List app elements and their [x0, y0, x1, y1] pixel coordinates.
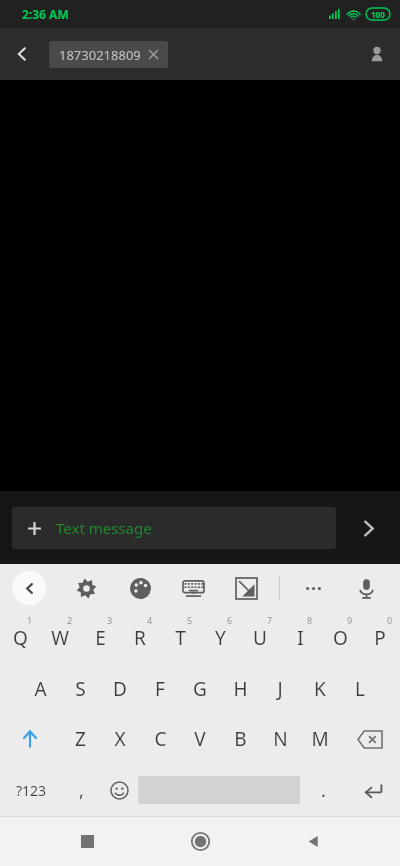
staticText: 6	[227, 614, 233, 626]
button[interactable]: X	[100, 714, 140, 764]
staticText: O	[333, 625, 348, 651]
button[interactable]: Back	[0, 32, 44, 76]
button[interactable]: S	[60, 664, 100, 714]
button[interactable]: U	[240, 612, 280, 664]
button[interactable]: Recent apps	[61, 816, 113, 866]
button[interactable]: F	[140, 664, 180, 714]
button[interactable]: K	[300, 664, 340, 714]
staticText: 5	[187, 614, 193, 626]
staticText: F	[155, 676, 165, 702]
button[interactable]: Enter	[346, 764, 400, 816]
button[interactable]: Theme	[120, 568, 160, 608]
button[interactable]: ,	[62, 764, 100, 816]
staticText: P	[374, 625, 386, 651]
button[interactable]: Z	[60, 714, 100, 764]
button[interactable]: R	[120, 612, 160, 664]
button[interactable]: C	[140, 714, 180, 764]
staticText: 0	[387, 614, 393, 626]
staticText: R	[134, 625, 146, 651]
button[interactable]: M	[300, 714, 340, 764]
button[interactable]: H	[220, 664, 260, 714]
button[interactable]: Y	[200, 612, 240, 664]
button[interactable]: Back	[287, 816, 339, 866]
staticText: N	[273, 726, 288, 752]
staticText: G	[193, 676, 207, 702]
button[interactable]: E	[80, 612, 120, 664]
button[interactable]: ?123	[0, 764, 62, 816]
staticText: 7	[267, 614, 273, 626]
button[interactable]: V	[180, 714, 220, 764]
staticText: A	[34, 676, 47, 702]
button[interactable]: T	[160, 612, 200, 664]
staticText: 9	[347, 614, 353, 626]
button[interactable]: 18730218809	[49, 41, 168, 68]
staticText: Q	[13, 625, 28, 651]
staticText: E	[95, 625, 106, 651]
button[interactable]: Send	[336, 504, 400, 552]
button[interactable]: Shift	[0, 714, 60, 764]
staticText: 4	[147, 614, 153, 626]
staticText: B	[234, 726, 247, 752]
staticText: Y	[215, 625, 226, 651]
staticText: .	[321, 778, 326, 803]
button[interactable]: .	[300, 764, 346, 816]
staticText: I	[297, 625, 304, 651]
button[interactable]: Emoji	[100, 764, 138, 816]
staticText: 8	[307, 614, 313, 626]
staticText: ,	[79, 778, 84, 803]
staticText: W	[51, 625, 69, 651]
button[interactable]: Add attachment	[12, 507, 56, 549]
staticText: 1	[27, 614, 33, 626]
staticText: V	[194, 726, 206, 752]
staticText: T	[175, 625, 186, 651]
button[interactable]: A	[20, 664, 60, 714]
button[interactable]: N	[260, 714, 300, 764]
button[interactable]: Resize keyboard	[226, 568, 266, 608]
button[interactable]: W	[40, 612, 80, 664]
button[interactable]: Keyboard layout	[173, 568, 213, 608]
staticText: H	[233, 676, 248, 702]
button[interactable]: P	[360, 612, 400, 664]
staticText: D	[113, 676, 127, 702]
button[interactable]: Settings	[66, 568, 106, 608]
button[interactable]: J	[260, 664, 300, 714]
button[interactable]: Contact details	[354, 31, 400, 77]
staticText: 2	[67, 614, 73, 626]
button[interactable]: I	[280, 612, 320, 664]
staticText: 3	[107, 614, 113, 626]
staticText: 100	[371, 9, 385, 20]
button[interactable]: Home	[174, 816, 226, 866]
button[interactable]: G	[180, 664, 220, 714]
staticText: L	[355, 676, 365, 702]
button[interactable]: Q	[0, 612, 40, 664]
staticText: ?123	[16, 781, 47, 800]
button[interactable]: B	[220, 714, 260, 764]
staticText: K	[314, 676, 326, 702]
staticText: S	[75, 676, 86, 702]
staticText: C	[154, 726, 167, 752]
staticText: Text message	[56, 518, 152, 538]
button[interactable]: More options	[293, 568, 333, 608]
button[interactable]: L	[340, 664, 380, 714]
button[interactable]: Delete	[340, 714, 400, 764]
staticText: M	[311, 726, 329, 752]
staticText: U	[253, 625, 267, 651]
button[interactable]: O	[320, 612, 360, 664]
staticText: 2:36 AM	[22, 6, 69, 22]
button[interactable]: Close toolbar	[12, 571, 46, 605]
staticText: 18730218809	[59, 46, 141, 64]
button[interactable]: D	[100, 664, 140, 714]
staticText: J	[277, 676, 283, 702]
button[interactable]: Voice input	[346, 568, 386, 608]
button[interactable]: Add attachment	[12, 507, 336, 549]
staticText: Z	[75, 726, 86, 752]
staticText: X	[114, 726, 126, 752]
